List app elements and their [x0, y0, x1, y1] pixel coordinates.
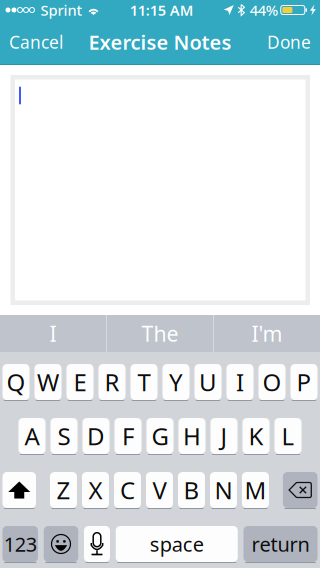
staticText: Q	[6, 366, 25, 398]
button[interactable]: I	[226, 364, 253, 401]
staticText: Z	[56, 474, 70, 506]
button[interactable]: Delete	[283, 472, 317, 509]
button[interactable]: T	[130, 364, 157, 401]
staticText: Sprint	[40, 0, 82, 20]
staticText: D	[87, 420, 105, 452]
button[interactable]: B	[178, 472, 205, 509]
button[interactable]: Dictate	[84, 526, 110, 563]
button[interactable]: G	[146, 418, 173, 455]
staticText: Exercise Notes	[88, 29, 231, 55]
button[interactable]: R	[98, 364, 125, 401]
staticText: I	[236, 366, 244, 398]
staticText: 44%	[250, 0, 278, 20]
staticText: N	[214, 474, 232, 506]
button[interactable]: D	[82, 418, 109, 455]
staticText: E	[73, 366, 86, 398]
staticText: C	[120, 474, 135, 506]
staticText: L	[281, 420, 294, 452]
button[interactable]: S	[50, 418, 77, 455]
button[interactable]: Emoji	[44, 526, 78, 563]
staticText: X	[88, 474, 102, 506]
button[interactable]: L	[274, 418, 301, 455]
button[interactable]: return	[243, 526, 317, 563]
button[interactable]: N	[210, 472, 237, 509]
staticText: 123	[4, 531, 37, 557]
button[interactable]: A	[18, 418, 45, 455]
staticText: G	[151, 420, 168, 452]
button[interactable]: J	[210, 418, 237, 455]
staticText: W	[37, 366, 59, 398]
button[interactable]: Cancel	[0, 20, 72, 64]
staticText: B	[183, 474, 199, 506]
staticText: U	[199, 366, 217, 398]
button[interactable]: I	[0, 315, 106, 352]
staticText: S	[57, 420, 70, 452]
staticText: return	[251, 531, 309, 557]
button[interactable]: C	[114, 472, 141, 509]
staticText: T	[137, 366, 150, 398]
button[interactable]: I'm	[214, 315, 320, 352]
staticText: A	[24, 420, 39, 452]
button[interactable]: O	[258, 364, 285, 401]
button[interactable]: V	[146, 472, 173, 509]
button[interactable]: U	[194, 364, 221, 401]
staticText: J	[220, 420, 227, 452]
staticText: Done	[267, 30, 311, 53]
staticText: space	[150, 531, 204, 557]
staticText: V	[152, 474, 166, 506]
staticText: 11:15 AM	[130, 0, 194, 20]
button[interactable]: F	[114, 418, 141, 455]
button[interactable]: P	[290, 364, 317, 401]
button[interactable]: H	[178, 418, 205, 455]
button[interactable]: M	[242, 472, 269, 509]
staticText: H	[183, 420, 201, 452]
staticText: I	[49, 319, 56, 348]
staticText: R	[104, 366, 119, 398]
button[interactable]: space	[116, 526, 238, 563]
staticText: I'm	[251, 319, 282, 348]
button[interactable]: The	[107, 315, 213, 352]
button[interactable]: Shift	[2, 472, 36, 509]
button[interactable]: Y	[162, 364, 189, 401]
staticText: The	[141, 319, 178, 348]
button[interactable]: W	[34, 364, 61, 401]
button[interactable]: Q	[2, 364, 29, 401]
button[interactable]: K	[242, 418, 269, 455]
button[interactable]: Z	[50, 472, 77, 509]
button[interactable]: 123	[2, 526, 38, 563]
button[interactable]: E	[66, 364, 93, 401]
staticText: M	[244, 474, 266, 506]
button[interactable]: X	[82, 472, 109, 509]
staticText: P	[296, 366, 311, 398]
button[interactable]: Done	[258, 20, 320, 64]
staticText: O	[262, 366, 281, 398]
staticText: F	[122, 420, 134, 452]
staticText: Cancel	[9, 30, 63, 53]
staticText: Y	[169, 366, 183, 398]
staticText: K	[248, 420, 263, 452]
